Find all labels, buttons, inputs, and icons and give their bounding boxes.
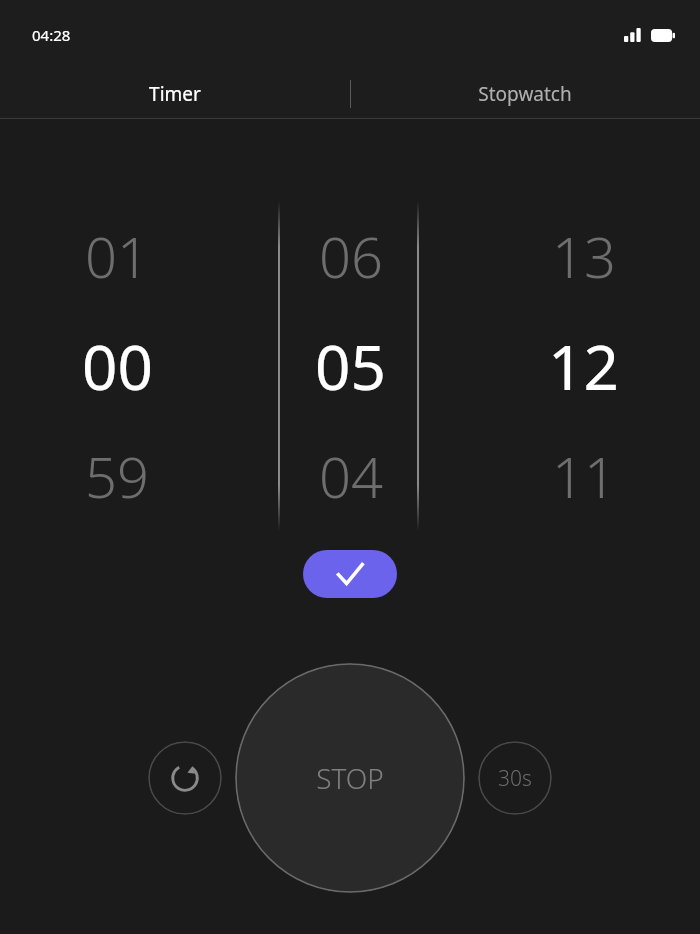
staticText: 11 (552, 438, 616, 514)
button[interactable]: Stopwatch (350, 70, 700, 118)
staticText: 01 (85, 218, 149, 294)
staticText: Stopwatch (478, 81, 572, 107)
button[interactable]: 06 (234, 201, 467, 531)
button[interactable]: Reset (148, 741, 222, 815)
staticText: Timer (149, 81, 201, 107)
button[interactable]: 13 (467, 201, 700, 531)
staticText: 00 (82, 324, 153, 408)
staticText: 05 (315, 324, 386, 408)
button[interactable]: 01 (0, 201, 234, 531)
button[interactable]: 30s (478, 741, 552, 815)
staticText: 04:28 (32, 25, 71, 45)
staticText: STOP (316, 759, 384, 797)
button[interactable]: STOP (235, 663, 465, 893)
staticText: 59 (85, 438, 149, 514)
staticText: 12 (548, 324, 619, 408)
staticText: 13 (552, 218, 616, 294)
staticText: 30s (498, 764, 532, 793)
button[interactable]: Confirm (303, 550, 397, 598)
button[interactable]: Timer (0, 70, 350, 118)
staticText: 06 (319, 218, 383, 294)
staticText: 04 (319, 438, 383, 514)
